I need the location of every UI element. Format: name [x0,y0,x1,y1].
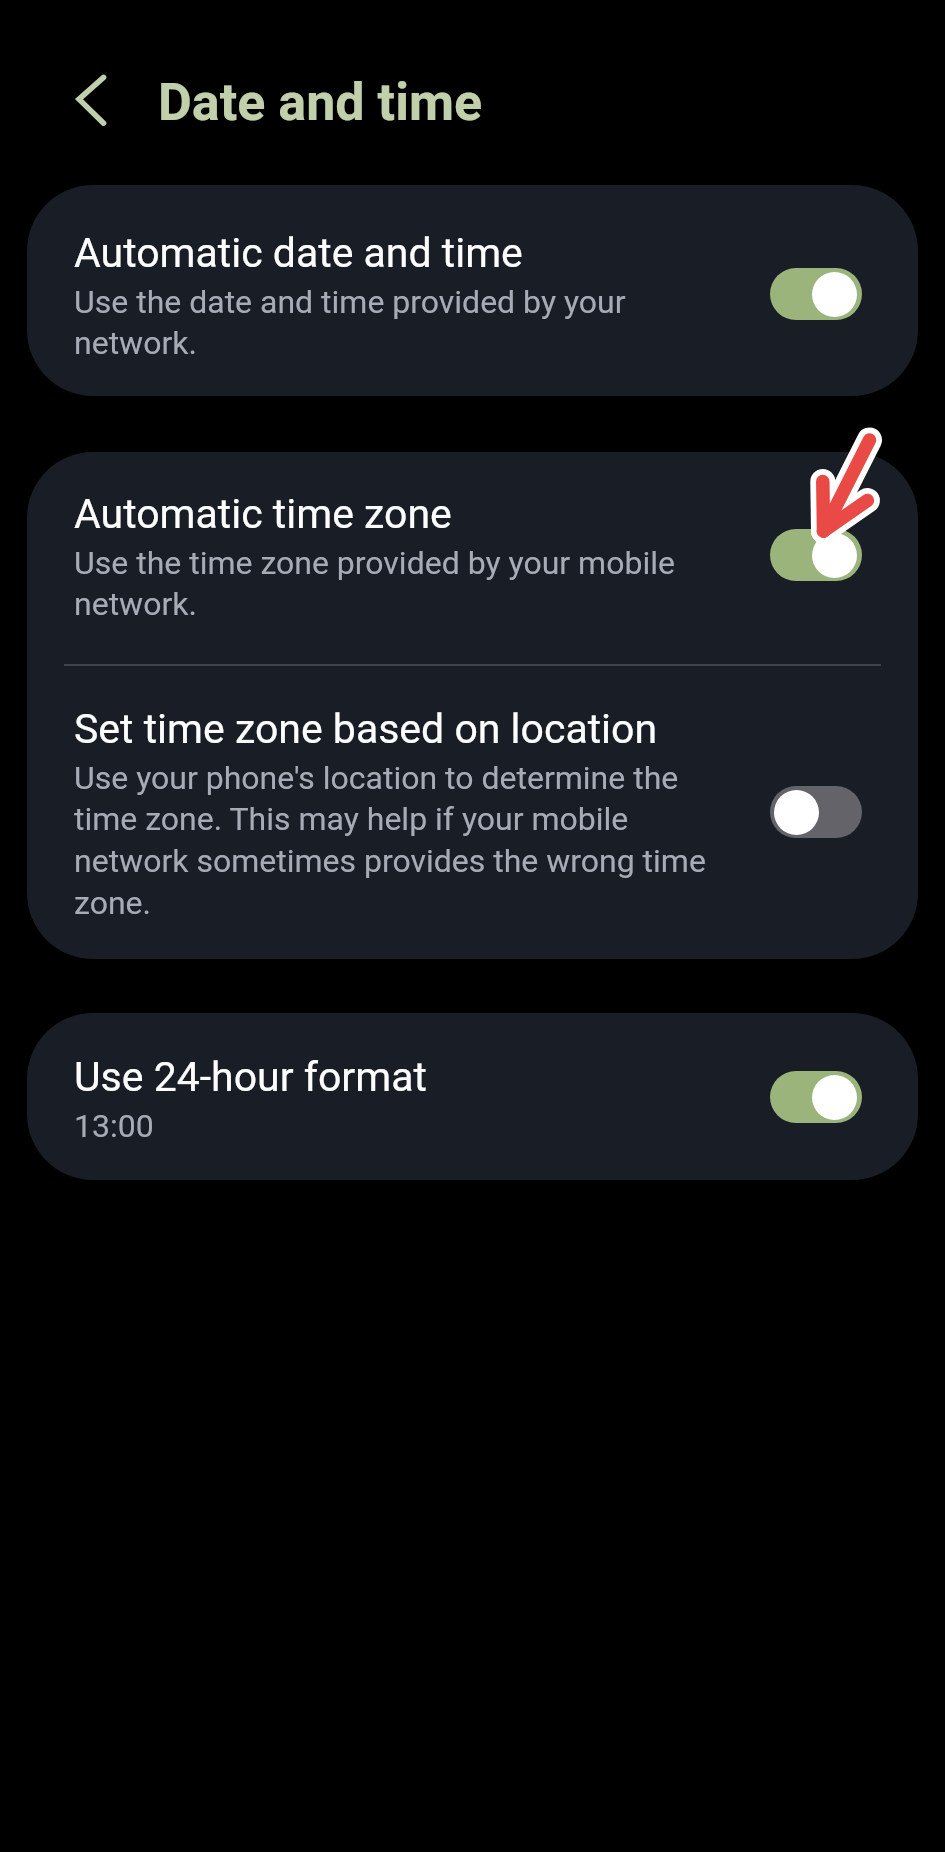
staticText: Use the time zone provided by your mobil… [74,544,740,623]
button[interactable]: Use 24-hour format toggle, on [770,1071,862,1123]
staticText: Use your phone's location to determine t… [74,759,740,922]
staticText: Automatic time zone [74,490,452,538]
button[interactable]: Set time zone based on location toggle, … [770,786,862,838]
staticText: Use the date and time provided by your n… [74,283,740,362]
button[interactable]: Set time zone based on location [27,666,918,959]
button[interactable]: Automatic time zone [27,452,918,664]
staticText: Automatic date and time [74,229,523,277]
staticText: Set time zone based on location [74,705,658,753]
button[interactable]: Automatic date and time toggle, on [770,268,862,320]
button[interactable]: Back [44,64,116,136]
staticText: Date and time [158,72,483,133]
button[interactable]: Automatic time zone toggle, on [770,529,862,581]
staticText: 13:00 [74,1107,154,1145]
staticText: Use 24-hour format [74,1053,427,1101]
button[interactable]: Use 24-hour format [27,1013,918,1180]
button[interactable]: Automatic date and time [27,185,918,396]
